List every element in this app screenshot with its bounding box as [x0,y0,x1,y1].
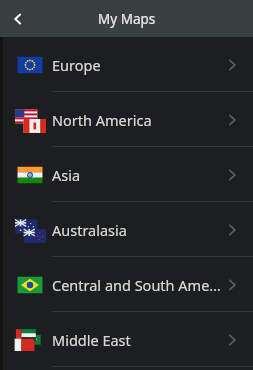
button[interactable]: Europe [0,37,253,92]
staticText: My Maps [98,10,156,28]
button[interactable]: Back [0,1,36,37]
staticText: North America [52,110,223,130]
staticText: Central and South America [52,275,223,295]
staticText: Australasia [52,220,223,240]
button[interactable]: North America [0,92,253,147]
button[interactable]: Middle East [0,312,253,367]
button[interactable]: Central and South America [0,257,253,312]
button[interactable]: Australasia [0,202,253,257]
button[interactable]: Asia [0,147,253,202]
staticText: Europe [52,55,223,75]
staticText: Middle East [52,330,223,350]
staticText: Asia [52,165,223,185]
